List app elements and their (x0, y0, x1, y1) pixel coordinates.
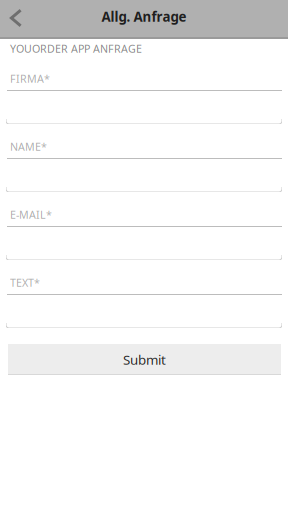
button[interactable]: Submit (8, 344, 281, 375)
staticText: FIRMA* (10, 71, 50, 86)
staticText: Allg. Anfrage (101, 8, 186, 25)
staticText: YOUORDER APP ANFRAGE (10, 41, 142, 56)
staticText: Submit (123, 351, 166, 368)
staticText: E-MAIL* (10, 207, 52, 222)
button[interactable]: Back (0, 0, 32, 39)
staticText: TEXT* (10, 275, 40, 290)
staticText: NAME* (10, 139, 47, 154)
